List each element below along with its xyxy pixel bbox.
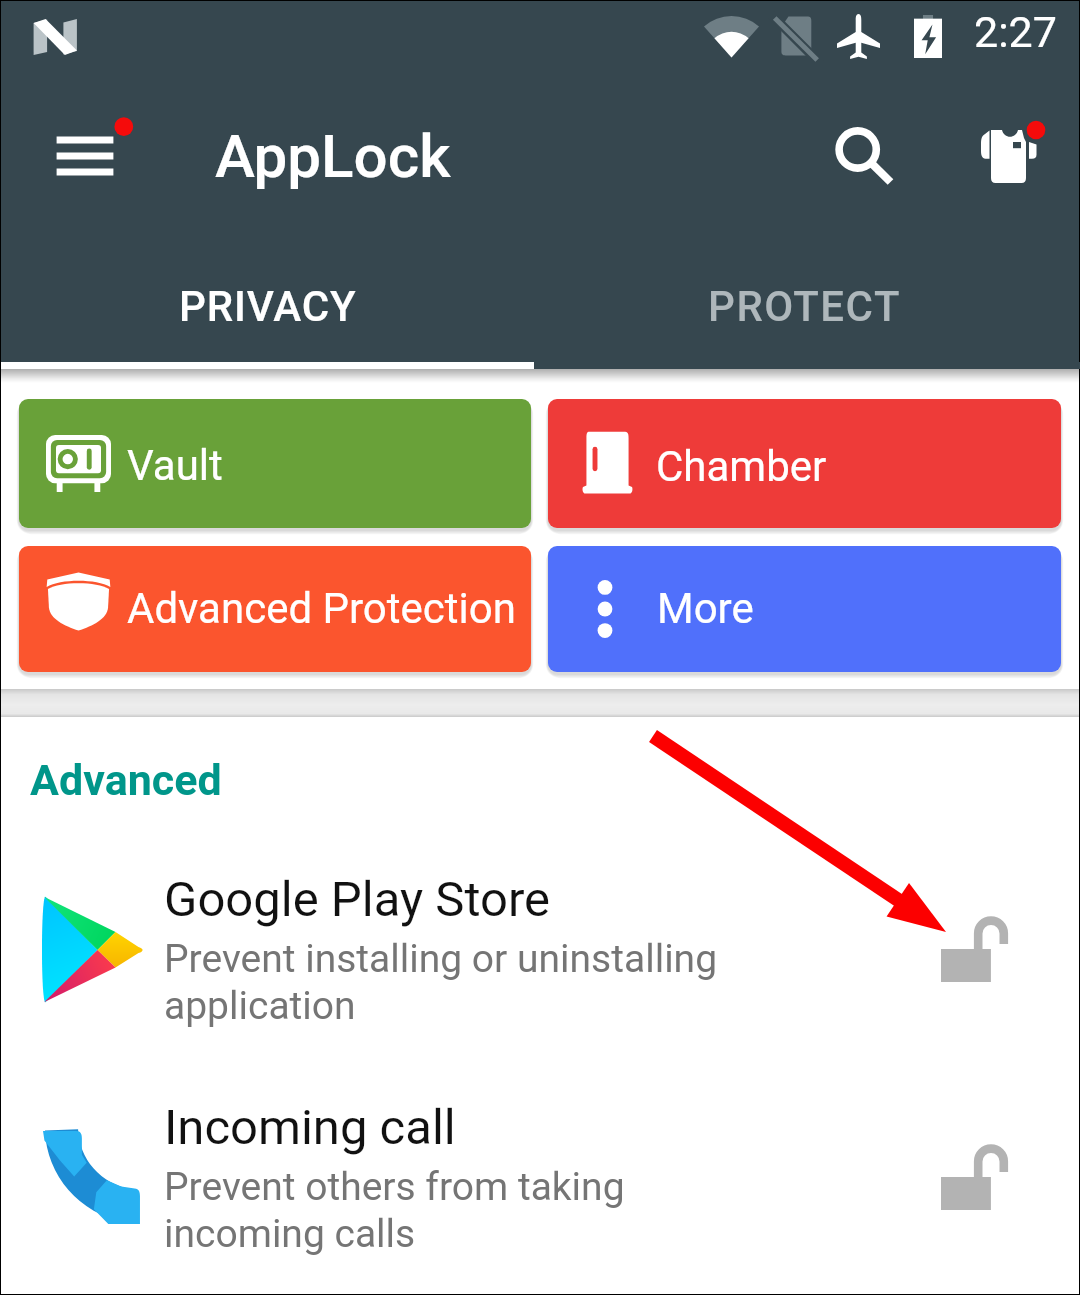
staticText: Incoming call bbox=[164, 1099, 456, 1156]
staticText: More bbox=[657, 584, 754, 633]
staticText: Chamber bbox=[656, 442, 827, 491]
staticText: Vault bbox=[127, 441, 223, 490]
staticText: AppLock bbox=[215, 121, 451, 191]
button[interactable]: More bbox=[548, 546, 1061, 672]
staticText: 2:27 bbox=[974, 7, 1057, 57]
button[interactable]: Menu bbox=[21, 107, 141, 207]
button[interactable]: Chamber bbox=[548, 399, 1061, 528]
button[interactable]: Search bbox=[797, 89, 917, 209]
button[interactable]: Vault bbox=[19, 399, 531, 528]
staticText: Advanced Protection bbox=[127, 584, 516, 633]
staticText: PRIVACY bbox=[179, 282, 357, 331]
staticText: Prevent installing or uninstalling appli… bbox=[164, 936, 718, 1029]
button[interactable]: PROTECT bbox=[540, 248, 1079, 362]
staticText: PROTECT bbox=[708, 282, 902, 331]
button[interactable]: Google Play Store lock bbox=[901, 876, 1061, 1036]
button[interactable]: Themes bbox=[946, 89, 1066, 209]
button[interactable]: Advanced Protection bbox=[19, 546, 531, 672]
staticText: Advanced bbox=[30, 755, 222, 805]
staticText: Google Play Store bbox=[164, 871, 551, 928]
button[interactable]: Incoming call lock bbox=[901, 1104, 1061, 1264]
button[interactable]: Google Play Store bbox=[1, 876, 1079, 1104]
button[interactable]: Incoming call bbox=[1, 1104, 1079, 1295]
staticText: Prevent others from taking incoming call… bbox=[164, 1164, 625, 1257]
button[interactable]: PRIVACY bbox=[1, 248, 540, 362]
